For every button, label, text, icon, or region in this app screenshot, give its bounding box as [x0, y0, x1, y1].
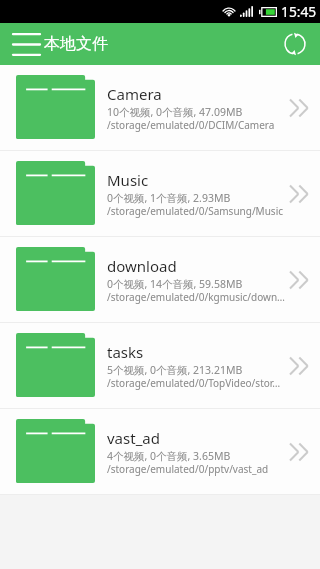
staticText: 4个视频, 0个音频, 3.65MB — [107, 449, 287, 463]
button[interactable]: tasks — [0, 323, 320, 409]
staticText: Camera — [107, 84, 285, 104]
button[interactable]: Music — [0, 151, 320, 237]
staticText: 10个视频, 0个音频, 47.09MB — [107, 105, 287, 119]
staticText: Music — [107, 170, 285, 190]
staticText: download — [107, 256, 285, 276]
button[interactable]: Camera — [0, 65, 320, 151]
staticText: vast_ad — [107, 428, 285, 448]
staticText: /storage/emulated/0/pptv/vast_ad — [107, 462, 287, 476]
button[interactable]: vast_ad — [0, 409, 320, 495]
staticText: /storage/emulated/0/DCIM/Camera — [107, 118, 287, 132]
staticText: 0个视频, 1个音频, 2.93MB — [107, 191, 287, 205]
button[interactable]: Open navigation menu — [6, 23, 46, 65]
staticText: /storage/emulated/0/TopVideo/stor… — [107, 376, 287, 390]
staticText: tasks — [107, 342, 285, 362]
staticText: 本地文件 — [44, 34, 108, 54]
staticText: /storage/emulated/0/Samsung/Music — [107, 204, 287, 218]
staticText: 5个视频, 0个音频, 213.21MB — [107, 363, 287, 377]
staticText: 0个视频, 14个音频, 59.58MB — [107, 277, 287, 291]
button[interactable]: download — [0, 237, 320, 323]
staticText: 15:45 — [281, 2, 317, 21]
staticText: /storage/emulated/0/kgmusic/down… — [107, 290, 287, 304]
button[interactable]: Refresh — [274, 23, 316, 65]
